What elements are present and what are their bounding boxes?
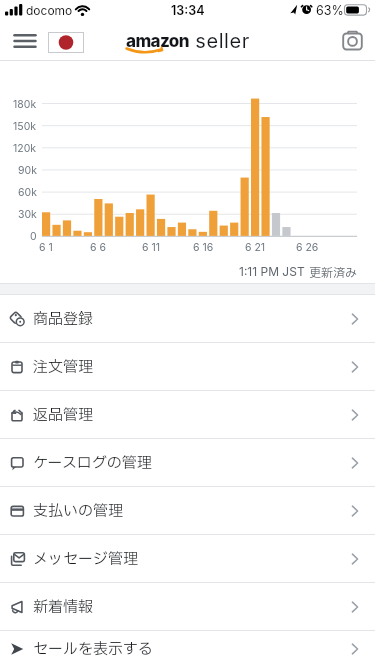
button[interactable]: 新着情報 [0,583,375,630]
staticText: 60k [18,186,37,199]
staticText: 0 [30,230,37,243]
staticText: セールを表示する [33,638,153,660]
staticText: 6 21 [245,241,266,254]
staticText: 13:34 [171,3,205,18]
button[interactable]: 支払いの管理 [0,487,375,534]
staticText: 6 16 [193,241,214,254]
button[interactable]: セールを表示する [0,631,375,667]
button[interactable]: 返品管理 [0,391,375,438]
staticText: 6 1 [39,241,53,254]
staticText: 6 11 [142,241,161,254]
staticText: 120k [13,142,37,155]
staticText: 支払いの管理 [33,500,124,522]
button[interactable] [8,27,42,54]
staticText: 1:11 PM JST [239,264,309,279]
staticText: 63% [316,3,344,18]
button[interactable] [336,25,370,56]
button[interactable]: 注文管理 [0,343,375,390]
staticText: 6 26 [296,241,319,254]
staticText: docomo [26,3,73,18]
staticText: メッセージ管理 [33,548,139,570]
staticText: seller [189,29,250,53]
staticText: 更新済み [309,264,358,282]
staticText: amazon [126,31,189,52]
button[interactable]: 商品登録 [0,295,375,342]
button[interactable]: ケースログの管理 [0,439,375,486]
staticText: 新着情報 [33,596,94,618]
staticText: 180k [13,98,37,111]
button[interactable] [48,32,84,53]
staticText: 注文管理 [33,356,94,378]
staticText: ケースログの管理 [33,452,152,474]
staticText: 90k [18,164,37,177]
staticText: 30k [18,208,37,221]
staticText: 返品管理 [33,404,94,426]
staticText: 6 6 [90,241,106,254]
button[interactable]: メッセージ管理 [0,535,375,582]
staticText: 商品登録 [33,308,94,330]
staticText: 150k [13,120,37,133]
